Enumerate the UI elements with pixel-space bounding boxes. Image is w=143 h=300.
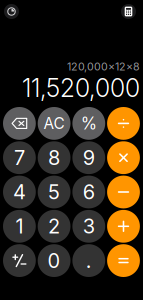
staticText: 120,000×12×8 [67,60,140,73]
staticText: 6 [83,180,95,204]
button[interactable]: % [72,107,105,140]
staticText: 1 [15,214,23,238]
staticText: 4 [13,180,26,204]
button[interactable]: AC [38,107,70,140]
button[interactable]: 3 [72,210,105,243]
button[interactable]: Multiply [107,141,140,174]
button[interactable]: Plus minus [3,244,36,277]
button[interactable]: 1 [3,210,36,243]
button[interactable]: Divide [107,107,140,140]
staticText: 3 [83,214,95,238]
staticText: 11,520,000 [22,73,140,103]
button[interactable]: 0 [38,244,70,277]
button[interactable]: Subtract [107,176,140,208]
button[interactable]: Delete [3,107,36,140]
button[interactable]: 6 [72,176,105,208]
staticText: 0 [48,248,61,273]
staticText: 8 [48,146,60,170]
button[interactable]: . [72,244,105,277]
button[interactable]: 7 [3,141,36,174]
staticText: % [81,113,97,133]
button[interactable]: Add [107,210,140,243]
button[interactable]: 2 [38,210,70,243]
button[interactable]: 9 [72,141,105,174]
staticText: 7 [14,146,25,170]
button[interactable]: 8 [38,141,70,174]
button[interactable]: 5 [38,176,70,208]
button[interactable]: Recents [4,4,19,19]
button[interactable]: Calculator [121,4,136,19]
staticText: 5 [48,180,60,204]
staticText: 9 [83,146,95,170]
button[interactable]: Equals [107,244,140,277]
staticText: . [86,248,92,273]
staticText: 2 [48,214,60,238]
staticText: AC [44,114,65,133]
button[interactable]: 4 [3,176,36,208]
